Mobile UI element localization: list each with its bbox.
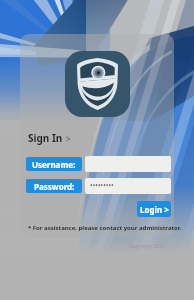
button[interactable]: •••••••••: [85, 178, 171, 194]
button[interactable]: Sign In: [28, 131, 71, 145]
button[interactable]: Login >: [137, 201, 171, 217]
other: App logo: [65, 51, 130, 117]
staticText: * For assistance, please contact your ad…: [28, 224, 182, 232]
staticText: Password:: [34, 181, 75, 192]
staticText: Copyright 2022: [129, 243, 165, 250]
staticText: >: [66, 133, 71, 144]
staticText: Username:: [32, 159, 76, 170]
staticText: Sign In: [28, 131, 63, 145]
staticText: •••••••••: [90, 181, 114, 191]
staticText: Login >: [140, 204, 169, 215]
